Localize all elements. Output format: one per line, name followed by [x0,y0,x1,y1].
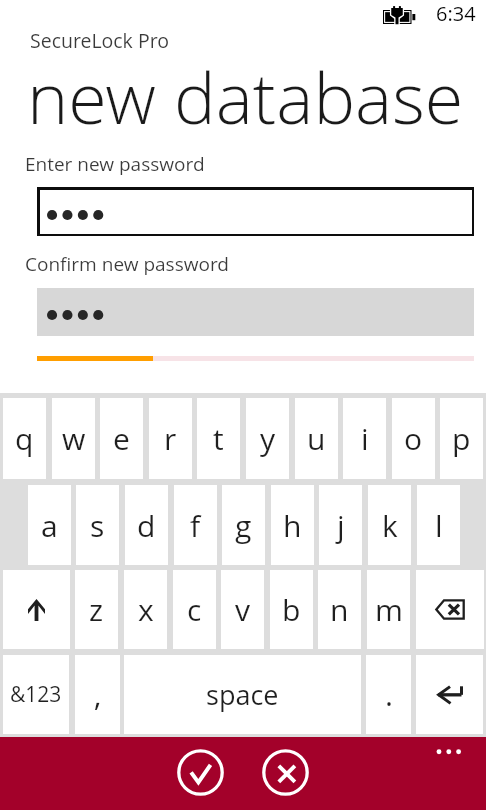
button[interactable] [37,187,474,236]
staticText: z [89,589,104,630]
button[interactable]: f [174,485,217,565]
staticText: k [382,505,398,546]
button[interactable]: Shift [3,570,70,649]
staticText: i [361,418,369,459]
staticText: , [94,674,102,715]
button[interactable]: Enter [416,655,483,734]
staticText: Enter new password [25,151,205,177]
staticText: d [137,505,156,546]
button[interactable]: g [222,485,265,565]
staticText: n [330,589,349,630]
button[interactable]: q [3,398,46,479]
staticText: c [187,589,202,630]
button[interactable]: r [149,398,192,479]
staticText: o [404,418,423,459]
button[interactable]: l [417,485,460,565]
staticText: u [307,418,326,459]
staticText: b [282,589,301,630]
button[interactable]: d [125,485,168,565]
staticText: y [260,418,276,459]
button[interactable]: e [100,398,143,479]
staticText: &123 [10,680,62,709]
button[interactable]: . [366,655,411,734]
staticText: l [435,505,443,546]
staticText: t [213,418,224,459]
staticText: Confirm new password [25,251,229,277]
button[interactable]: o [392,398,435,479]
button[interactable]: i [343,398,386,479]
button[interactable]: k [368,485,411,565]
staticText: g [235,505,252,546]
staticText: h [283,505,302,546]
button[interactable]: b [270,570,313,649]
staticText: f [190,505,201,546]
button[interactable]: u [295,398,338,479]
button[interactable]: s [76,485,119,565]
button[interactable]: z [75,570,118,649]
staticText: 6:34 [436,0,476,27]
staticText: j [337,505,345,546]
staticText: v [235,589,251,630]
button[interactable]: t [197,398,240,479]
button[interactable]: a [28,485,71,565]
staticText: new database [27,49,464,144]
button[interactable]: &123 [3,655,69,734]
staticText: a [41,505,58,546]
button[interactable]: n [318,570,361,649]
button[interactable]: Accept [177,749,224,796]
staticText: e [113,418,130,459]
staticText: r [164,418,177,459]
button[interactable]: w [52,398,95,479]
staticText: space [206,676,279,713]
staticText: s [90,505,105,546]
staticText: w [62,418,86,459]
staticText: p [452,418,471,459]
button[interactable]: v [221,570,264,649]
button[interactable]: c [173,570,216,649]
button[interactable]: , [75,655,120,734]
staticText: . [385,674,393,715]
button[interactable]: Backspace [416,570,484,649]
button[interactable]: j [319,485,362,565]
button[interactable]: space [124,655,361,734]
button[interactable]: Cancel [262,749,309,796]
button[interactable]: y [246,398,289,479]
button[interactable]: h [271,485,314,565]
staticText: m [375,589,403,630]
staticText: SecureLock Pro [30,27,169,54]
button[interactable]: x [124,570,167,649]
button[interactable]: More options [424,737,479,767]
staticText: q [15,418,34,459]
button[interactable] [37,288,474,336]
staticText: x [138,589,154,630]
button[interactable]: p [440,398,483,479]
button[interactable]: m [367,570,410,649]
